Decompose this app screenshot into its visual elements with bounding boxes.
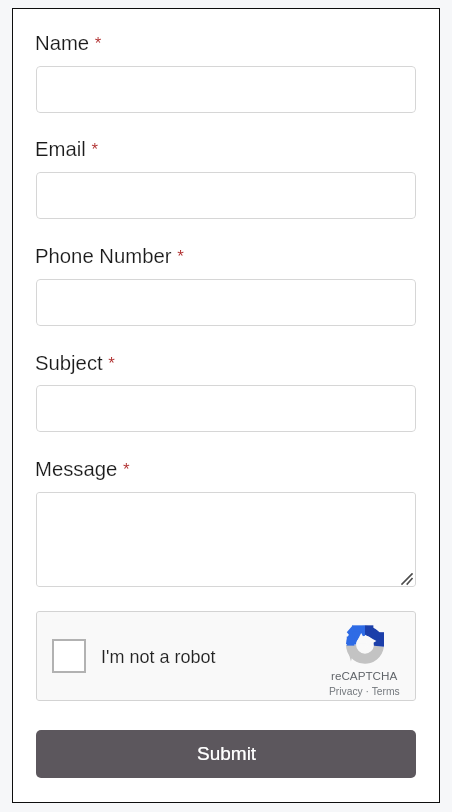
button[interactable]: I'm not a robot checkbox [52,639,86,673]
staticText: Privacy · Terms [329,686,400,698]
staticText: Message * [35,458,130,481]
staticText: I'm not a robot [101,647,216,667]
button[interactable] [36,172,416,219]
button[interactable]: I'm not a robot checkbox [36,611,416,701]
button[interactable] [36,492,416,587]
other: reCAPTCHA logo [346,624,384,662]
staticText: Submit [197,743,257,764]
button[interactable] [36,385,416,432]
staticText: Subject * [35,352,115,375]
staticText: Email * [35,138,99,161]
staticText: Phone Number * [35,245,184,268]
button[interactable] [36,279,416,326]
button[interactable] [36,66,416,113]
staticText: Name * [35,32,102,55]
staticText: reCAPTCHA [331,669,398,682]
button[interactable]: Submit [36,730,416,778]
